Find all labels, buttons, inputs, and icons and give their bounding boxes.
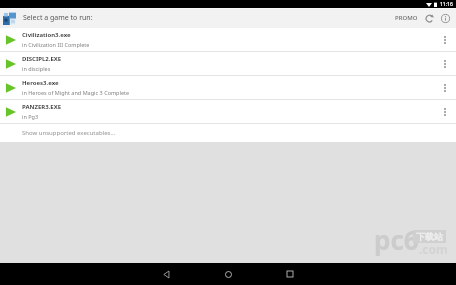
button[interactable]: Home — [197, 263, 259, 285]
button[interactable]: Recent apps — [259, 263, 321, 285]
button[interactable]: Back — [135, 263, 197, 285]
button[interactable]: Civilization3.exe — [0, 28, 456, 51]
button[interactable]: PROMO — [392, 10, 421, 26]
button[interactable]: More options — [436, 103, 454, 121]
staticText: PANZER3.EXE — [22, 103, 62, 111]
staticText: .com — [419, 241, 448, 257]
staticText: in disciples — [22, 65, 51, 72]
staticText: Civilization3.exe — [22, 31, 71, 39]
button[interactable]: More options — [436, 31, 454, 49]
staticText: in Heroes of Might and Magic 3 Complete — [22, 89, 130, 96]
button[interactable]: PANZER3.EXE — [0, 100, 456, 123]
staticText: pc6 — [374, 222, 419, 257]
button[interactable]: Refresh — [421, 10, 437, 26]
staticText: in Pg3 — [22, 113, 39, 120]
staticText: Select a game to run: — [23, 13, 93, 23]
staticText: DISCIPL2.EXE — [22, 55, 62, 63]
staticText: 11:16 — [440, 1, 453, 8]
staticText: 下载站 — [416, 231, 443, 242]
button[interactable]: Show unsupported executables... — [0, 124, 456, 142]
staticText: Heroes3.exe — [22, 79, 59, 87]
staticText: in Civilization III Complete — [22, 41, 90, 48]
button[interactable]: More options — [436, 79, 454, 97]
staticText: Show unsupported executables... — [22, 129, 116, 137]
button[interactable]: More options — [436, 55, 454, 73]
button[interactable]: Info — [437, 10, 453, 26]
staticText: PROMO — [395, 14, 418, 22]
button[interactable]: Heroes3.exe — [0, 76, 456, 99]
button[interactable]: DISCIPL2.EXE — [0, 52, 456, 75]
